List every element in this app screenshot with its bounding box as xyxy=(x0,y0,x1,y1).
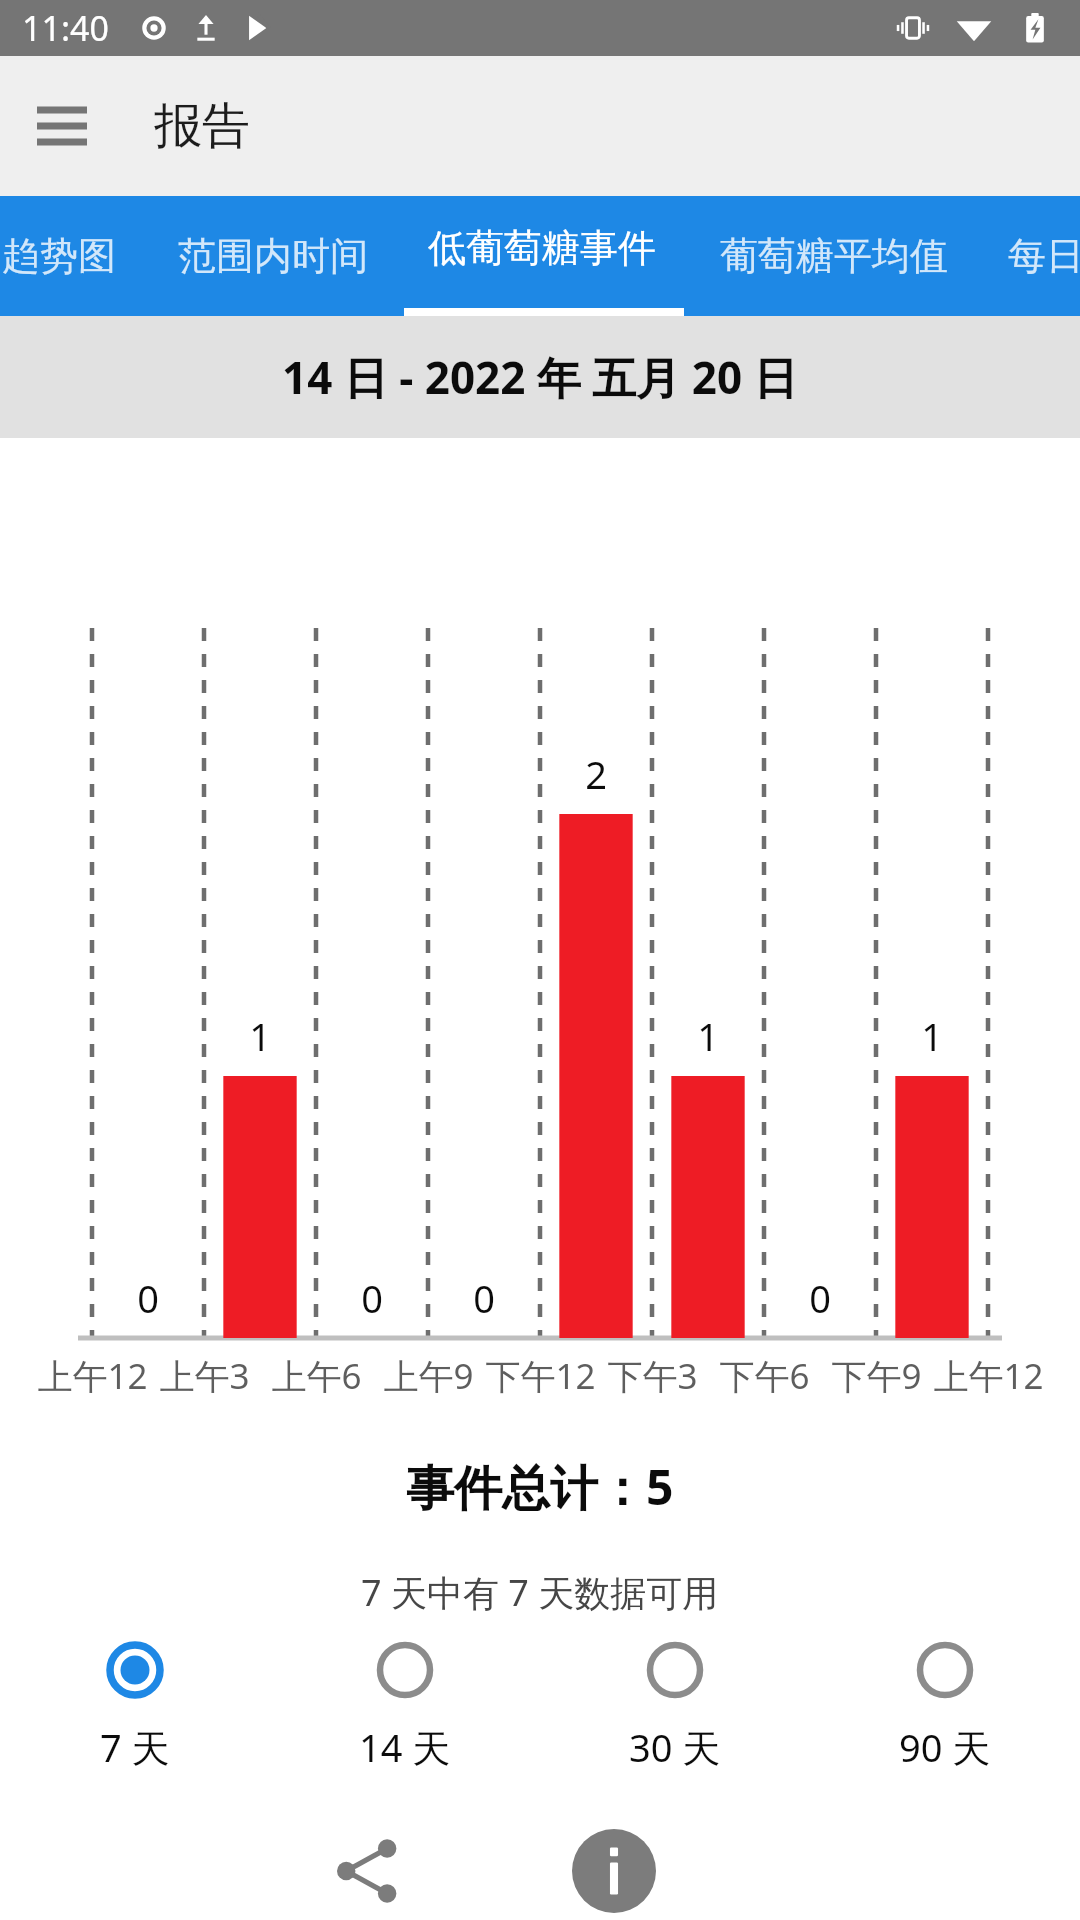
staticText: 7 天中有 7 天数据可用 xyxy=(361,1568,719,1617)
staticText: 1 xyxy=(249,1010,271,1062)
button[interactable]: 趋势图 xyxy=(0,232,124,280)
staticText: 下午9 xyxy=(831,1352,922,1400)
staticText: 上午12 xyxy=(933,1352,1044,1400)
staticText: 1 xyxy=(697,1010,719,1062)
staticText: 30 天 xyxy=(629,1721,721,1773)
staticText: 下午12 xyxy=(485,1352,596,1400)
staticText: 下午3 xyxy=(607,1352,698,1400)
button[interactable]: Information xyxy=(562,1821,666,1920)
staticText: 0 xyxy=(361,1272,383,1324)
button[interactable]: 90 天 xyxy=(810,1641,1080,1773)
staticText: 下午6 xyxy=(719,1352,810,1400)
staticText: 上午6 xyxy=(271,1352,362,1400)
button[interactable]: 每日 xyxy=(1000,232,1080,280)
staticText: 0 xyxy=(473,1272,495,1324)
button[interactable]: 30 天 xyxy=(540,1641,810,1773)
staticText: 事件总计：5 xyxy=(406,1454,674,1520)
staticText: 11:40 xyxy=(22,5,109,51)
button[interactable]: Share xyxy=(318,1821,418,1920)
staticText: 上午12 xyxy=(37,1352,148,1400)
staticText: 上午9 xyxy=(383,1352,474,1400)
staticText: 14 天 xyxy=(359,1721,451,1773)
button[interactable]: 低葡萄糖事件 xyxy=(420,224,664,272)
staticText: 0 xyxy=(809,1272,831,1324)
staticText: 上午3 xyxy=(159,1352,250,1400)
button[interactable]: 范围内时间 xyxy=(170,232,376,280)
button[interactable]: 葡萄糖平均值 xyxy=(712,232,956,280)
button[interactable]: 7 天 xyxy=(0,1641,270,1773)
staticText: 90 天 xyxy=(899,1721,991,1773)
staticText: 2 xyxy=(585,748,607,800)
staticText: 14 日 - 2022 年 五月 20 日 xyxy=(282,347,798,407)
staticText: 7 天 xyxy=(100,1721,170,1773)
staticText: 1 xyxy=(921,1010,943,1062)
button[interactable]: 14 天 xyxy=(270,1641,540,1773)
staticText: 报告 xyxy=(154,96,250,156)
staticText: 0 xyxy=(137,1272,159,1324)
button[interactable]: Open navigation drawer xyxy=(22,86,102,166)
